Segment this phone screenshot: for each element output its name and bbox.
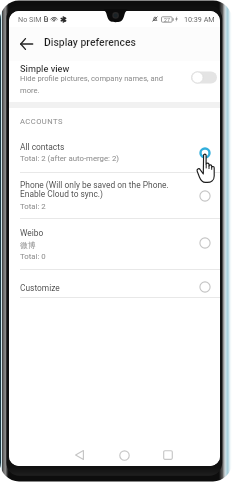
staticText: 10:39 AM (184, 15, 215, 23)
staticText: Customize (20, 283, 60, 293)
button[interactable]: Simple view (9, 61, 220, 103)
staticText: Display preferences (44, 36, 136, 48)
button[interactable]: Phone (Will only be saved on the Phone. … (9, 172, 220, 218)
staticText: 微博 (20, 240, 36, 250)
staticText: Total: 2 (20, 202, 46, 211)
staticText: ACCOUNTS (20, 117, 63, 126)
staticText: Simple view (20, 63, 70, 74)
button[interactable]: Home (114, 445, 134, 465)
staticText: 27 (164, 17, 170, 23)
staticText: Weibo (20, 228, 44, 238)
staticText: All contacts (20, 142, 65, 152)
button[interactable]: All contacts (9, 132, 220, 172)
button[interactable]: Weibo (9, 218, 220, 269)
button[interactable]: Customize (9, 269, 220, 297)
button[interactable]: Recents (158, 445, 178, 465)
button[interactable]: Back (69, 445, 89, 465)
staticText: Total: 0 (20, 252, 46, 261)
staticText: Phone (Will only be saved on the Phone. … (20, 180, 169, 199)
staticText: Total: 2 (after auto-merge: 2) (20, 154, 120, 163)
staticText: No SIM (18, 15, 42, 23)
button[interactable]: Back (15, 33, 37, 55)
button[interactable]: Simple view toggle (191, 71, 217, 84)
staticText: Hide profile pictures, company names, an… (20, 74, 164, 95)
